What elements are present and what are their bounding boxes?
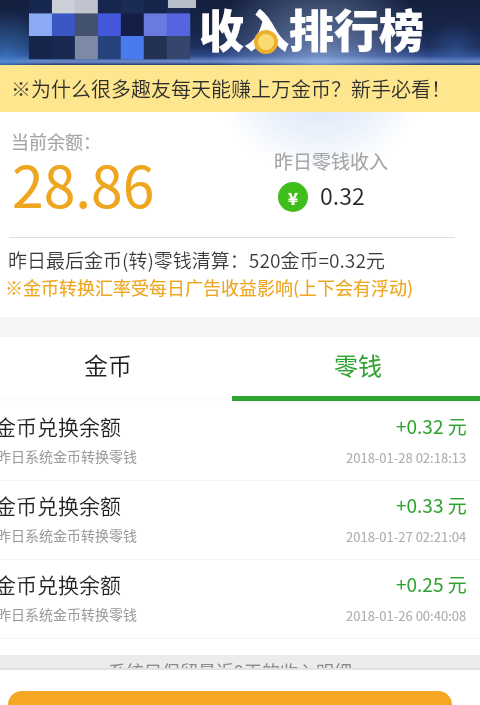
staticText: 昨日系统金币转换零钱	[0, 446, 137, 466]
staticText: 当前余额：	[11, 128, 101, 154]
button[interactable]: 零钱	[232, 337, 480, 396]
staticText: 金币	[84, 347, 132, 382]
staticText: 2018-01-27 02:21:04	[346, 527, 467, 546]
button[interactable]: 金币兑换余额	[0, 402, 480, 481]
button[interactable]: 提现	[8, 691, 452, 705]
staticText: ※为什么很多趣友每天能赚上万金币？新手必看！	[11, 74, 451, 103]
staticText: 收入排行榜	[199, 0, 425, 61]
staticText: 金币兑换余额	[0, 411, 121, 441]
staticText: ¥	[288, 185, 299, 210]
button[interactable]: 金币	[0, 337, 232, 396]
staticText: +0.32 元	[396, 412, 467, 440]
staticText: 金币兑换余额	[0, 569, 121, 599]
staticText: 系统只保留最近9天的收入明细	[108, 658, 352, 670]
staticText: +0.33 元	[396, 491, 467, 519]
staticText: ※金币转换汇率受每日广告收益影响(上下会有浮动)	[5, 274, 414, 300]
staticText: 昨日最后金币(转)零钱清算：520金币=0.32元	[8, 246, 385, 274]
staticText: 0.32	[320, 178, 365, 211]
button[interactable]: ※为什么很多趣友每天能赚上万金币？新手必看！	[0, 65, 480, 112]
staticText: 昨日系统金币转换零钱	[0, 604, 137, 624]
staticText: 昨日零钱收入	[274, 147, 389, 175]
staticText: 金币兑换余额	[0, 490, 121, 520]
staticText: 2018-01-28 02:18:13	[346, 448, 467, 467]
staticText: 零钱	[334, 347, 382, 382]
staticText: +0.25 元	[396, 570, 467, 598]
button[interactable]: 金币兑换余额	[0, 560, 480, 639]
staticText: 28.86	[12, 142, 155, 225]
staticText: 昨日系统金币转换零钱	[0, 525, 137, 545]
button[interactable]: 金币兑换余额	[0, 481, 480, 560]
staticText: 2018-01-26 00:40:08	[346, 606, 467, 625]
